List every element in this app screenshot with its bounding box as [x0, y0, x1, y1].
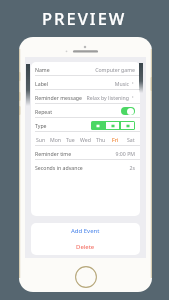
staticText: Reminder message	[35, 94, 82, 101]
button[interactable]: Type option	[92, 122, 104, 129]
staticText: Reminder time	[35, 150, 72, 157]
staticText: Fri	[112, 136, 119, 143]
staticText: Music	[114, 80, 129, 87]
staticText: Mon	[50, 136, 62, 143]
button[interactable]: Reminder time	[31, 146, 140, 160]
button[interactable]: Mon	[48, 132, 63, 146]
staticText: 9:00 PM	[115, 150, 135, 157]
button[interactable]: Delete	[31, 239, 140, 255]
staticText: Seconds in advance	[35, 164, 83, 171]
staticText: 2s	[129, 164, 135, 171]
staticText: Delete	[76, 243, 95, 251]
staticText: PREVIEW	[42, 7, 127, 29]
staticText: Add Event	[71, 227, 100, 235]
staticText: Computer game	[95, 66, 135, 73]
button[interactable]: Thu	[93, 132, 108, 146]
button[interactable]: Fri	[108, 132, 123, 146]
button[interactable]: Sun	[33, 132, 48, 146]
button[interactable]: Type option	[121, 122, 134, 129]
staticText: Repeat	[35, 108, 53, 115]
staticText: Type	[35, 122, 47, 129]
button[interactable]: Tue	[63, 132, 78, 146]
button[interactable]: Repeat	[31, 104, 140, 118]
staticText: Thu	[96, 136, 106, 143]
staticText: Tue	[66, 136, 75, 143]
staticText: Wed	[80, 136, 91, 143]
button[interactable]: Label	[31, 76, 140, 90]
button[interactable]: Reminder message	[31, 90, 140, 104]
button[interactable]: Seconds in advance	[31, 160, 140, 174]
staticText: Sat	[127, 136, 135, 143]
staticText: Name	[35, 66, 50, 73]
button[interactable]: Wed	[78, 132, 93, 146]
button[interactable]: Type option	[106, 122, 119, 129]
staticText: Label	[35, 80, 49, 87]
button[interactable]: Sat	[123, 132, 138, 146]
staticText: Sun	[36, 136, 46, 143]
button[interactable]: Name	[31, 62, 140, 76]
other: Home	[75, 266, 97, 288]
other: Repeat toggle	[121, 107, 135, 115]
staticText: Relax by listening to...	[84, 94, 129, 101]
button[interactable]: Add Event	[31, 223, 140, 239]
